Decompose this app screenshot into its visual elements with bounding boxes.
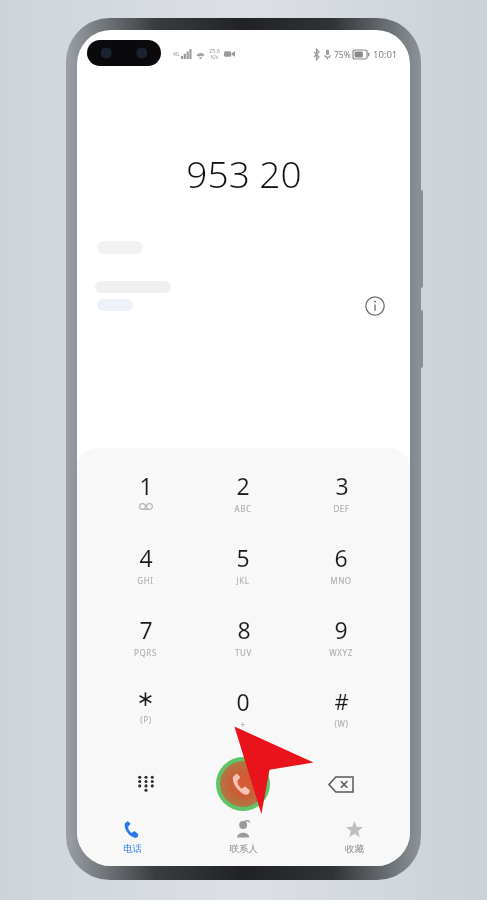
staticText: JKL [236,575,250,586]
staticText: 9 [334,614,348,645]
staticText: GHI [137,575,154,586]
staticText: 2 [236,470,250,501]
staticText: ABC [234,503,252,514]
button[interactable]: 0 [194,686,292,738]
button[interactable]: 电话 [77,808,188,866]
staticText: 25.6 [209,47,220,54]
staticText: 10:01 [373,48,398,61]
staticText: 0 [236,686,250,717]
button[interactable]: 3 [292,470,390,522]
button[interactable]: 联系人 [188,808,299,866]
button[interactable]: # [292,686,390,738]
staticText: 3 [335,470,349,501]
staticText: 5 [236,542,250,573]
staticText: 75% [334,49,351,61]
button[interactable]: Call [194,752,292,816]
staticText: 953 20 [186,148,302,198]
button[interactable]: Call details info [358,289,392,323]
staticText: 8 [237,614,251,645]
staticText: TUV [235,647,252,658]
staticText: PQRS [134,647,157,658]
staticText: DEF [333,503,350,514]
staticText: 电话 [123,843,142,855]
button[interactable]: 8 [194,614,292,666]
staticText: (P) [140,714,152,725]
staticText: + [240,719,246,730]
staticText: ∗ [136,686,155,712]
staticText: 7 [139,614,153,645]
staticText: 4 [139,542,153,573]
staticText: K/s [211,54,219,61]
staticText: 1 [139,470,153,501]
staticText: # [334,686,349,716]
button[interactable]: 5 [194,542,292,594]
button[interactable]: 6 [292,542,390,594]
button[interactable]: 7 [97,614,194,666]
staticText: WXYZ [329,647,353,658]
staticText: 4G [173,51,180,58]
button[interactable]: Backspace [292,752,390,816]
staticText: (W) [334,718,349,729]
staticText: 6 [334,542,348,573]
staticText: MNO [330,575,352,586]
button[interactable]: 2 [194,470,292,522]
button[interactable]: Hide keypad [97,752,194,816]
staticText: 联系人 [229,843,258,855]
button[interactable]: 收藏 [299,808,410,866]
staticText: 收藏 [345,843,364,855]
button[interactable]: 9 [292,614,390,666]
button[interactable]: 1 [97,470,194,522]
button[interactable]: ∗ [97,686,194,738]
button[interactable]: 4 [97,542,194,594]
